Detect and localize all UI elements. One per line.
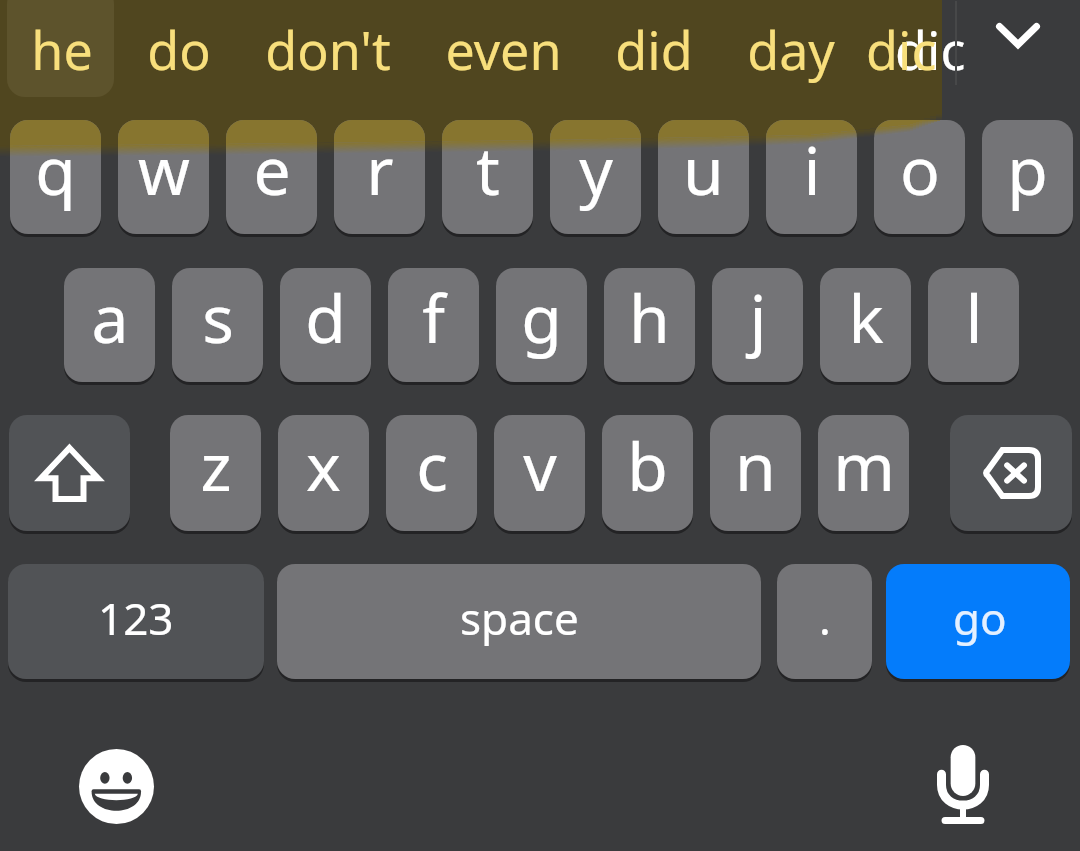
- button[interactable]: h: [604, 268, 695, 382]
- button[interactable]: go: [886, 564, 1070, 679]
- button[interactable]: even: [430, 0, 577, 97]
- staticText: dic: [866, 14, 937, 85]
- button[interactable]: d: [280, 268, 371, 382]
- button[interactable]: y: [550, 120, 641, 234]
- button[interactable]: t: [442, 120, 533, 234]
- button[interactable]: Voice input: [905, 727, 1020, 842]
- staticText: v: [523, 420, 557, 510]
- staticText: q: [35, 124, 76, 214]
- button[interactable]: g: [496, 268, 587, 382]
- button[interactable]: Backspace: [950, 415, 1072, 531]
- staticText: g: [521, 272, 562, 362]
- staticText: a: [91, 272, 129, 362]
- button[interactable]: j: [712, 268, 803, 382]
- button[interactable]: o: [874, 120, 965, 234]
- staticText: f: [422, 272, 445, 362]
- staticText: z: [200, 420, 232, 510]
- staticText: o: [900, 124, 940, 214]
- staticText: t: [476, 124, 500, 214]
- staticText: l: [965, 272, 983, 362]
- button[interactable]: he: [7, 0, 117, 97]
- staticText: space: [460, 588, 579, 648]
- button[interactable]: q: [10, 120, 101, 234]
- staticText: do: [147, 14, 211, 85]
- staticText: s: [202, 272, 234, 362]
- button[interactable]: Hide suggestions: [972, 0, 1064, 70]
- staticText: even: [445, 14, 562, 85]
- staticText: 123: [98, 588, 174, 648]
- staticText: day: [747, 14, 835, 85]
- button[interactable]: z: [170, 415, 261, 531]
- staticText: w: [138, 124, 190, 214]
- button[interactable]: v: [494, 415, 585, 531]
- button[interactable]: f: [388, 268, 479, 382]
- staticText: j: [749, 272, 767, 362]
- staticText: r: [366, 124, 394, 214]
- button[interactable]: w: [118, 120, 209, 234]
- staticText: k: [848, 272, 884, 362]
- staticText: e: [253, 124, 291, 214]
- staticText: p: [1007, 124, 1048, 214]
- staticText: x: [306, 420, 341, 510]
- button[interactable]: s: [172, 268, 263, 382]
- staticText: y: [579, 124, 613, 214]
- button[interactable]: a: [64, 268, 155, 382]
- button[interactable]: day: [730, 0, 851, 97]
- staticText: .: [819, 588, 831, 648]
- button[interactable]: dic: [860, 0, 1000, 97]
- button[interactable]: 123: [8, 564, 264, 679]
- button[interactable]: did: [591, 0, 716, 97]
- button[interactable]: e: [226, 120, 317, 234]
- staticText: don't: [265, 14, 391, 85]
- button[interactable]: p: [982, 120, 1073, 234]
- staticText: b: [627, 420, 668, 510]
- button[interactable]: r: [334, 120, 425, 234]
- staticText: c: [416, 420, 448, 510]
- staticText: u: [683, 124, 724, 214]
- staticText: m: [833, 420, 895, 510]
- staticText: go: [953, 588, 1007, 648]
- staticText: d: [305, 272, 346, 362]
- button[interactable]: u: [658, 120, 749, 234]
- button[interactable]: [7, 0, 114, 97]
- staticText: did: [615, 14, 693, 85]
- staticText: he: [31, 14, 93, 85]
- button[interactable]: i: [766, 120, 857, 234]
- button[interactable]: c: [386, 415, 477, 531]
- staticText: n: [735, 420, 776, 510]
- button[interactable]: n: [710, 415, 801, 531]
- button[interactable]: don't: [246, 0, 410, 97]
- button[interactable]: b: [602, 415, 693, 531]
- button[interactable]: m: [818, 415, 909, 531]
- button[interactable]: x: [278, 415, 369, 531]
- staticText: h: [629, 272, 670, 362]
- button[interactable]: Emoji: [59, 729, 174, 844]
- button[interactable]: space: [277, 564, 761, 679]
- button[interactable]: k: [820, 268, 911, 382]
- staticText: i: [803, 124, 821, 214]
- button[interactable]: .: [777, 564, 872, 679]
- button[interactable]: do: [124, 0, 233, 97]
- button[interactable]: Shift: [9, 415, 130, 531]
- staticText: dic: [895, 14, 966, 85]
- button[interactable]: l: [928, 268, 1019, 382]
